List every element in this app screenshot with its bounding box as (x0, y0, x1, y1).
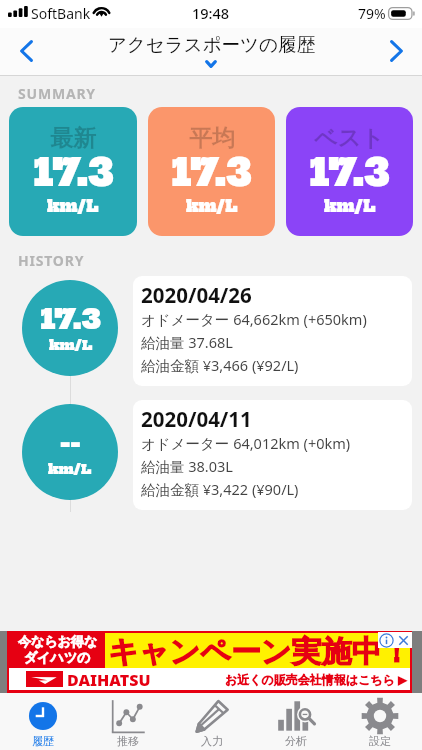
button[interactable]: 2020/04/11 (133, 400, 412, 510)
button[interactable]: 平均 (148, 107, 275, 236)
staticText: 履歴 (32, 734, 54, 748)
staticText: 給油金額 ¥3,422 (¥90/L) (141, 479, 299, 499)
staticText: お近くの販売会社情報はこちら ▶ (225, 671, 408, 687)
button[interactable]: Ad info (379, 633, 394, 648)
staticText: HISTORY (18, 251, 85, 270)
button[interactable]: 履歴 (0, 693, 85, 750)
button[interactable]: 分析 (254, 693, 338, 750)
button[interactable]: Expand (196, 56, 226, 72)
staticText: ダイハツの (24, 649, 91, 665)
staticText: ベスト (314, 124, 385, 153)
button[interactable]: Back (0, 28, 52, 76)
staticText: 給油金額 ¥3,466 (¥92/L) (141, 355, 299, 375)
staticText: 17.3 (40, 302, 101, 336)
staticText: 19:48 (192, 3, 230, 23)
staticText: キャンペーン実施中！ (108, 633, 412, 667)
button[interactable]: Close ad (396, 633, 411, 648)
button[interactable]: ベスト (286, 107, 413, 236)
button[interactable]: Forward (370, 28, 422, 76)
staticText: -- (60, 426, 81, 460)
staticText: 最新 (50, 124, 96, 153)
button[interactable]: 2020/04/26 (133, 276, 412, 386)
button[interactable]: 入力 (170, 693, 254, 750)
staticText: 今ならお得な (18, 633, 98, 649)
staticText: 入力 (201, 734, 223, 748)
staticText: オドメーター 64,662km (+650km) (141, 309, 367, 329)
button[interactable]: 17.3 (22, 280, 118, 376)
staticText: 2020/04/11 (141, 405, 252, 433)
staticText: 給油量 37.68L (141, 332, 233, 352)
staticText: km/L (48, 461, 92, 478)
staticText: SoftBank (31, 4, 91, 23)
staticText: SUMMARY (18, 84, 96, 103)
staticText: 17.3 (33, 150, 114, 196)
staticText: 給油量 38.03L (141, 456, 233, 476)
staticText: 17.3 (309, 150, 390, 196)
staticText: km/L (49, 337, 93, 354)
staticText: オドメーター 64,012km (+0km) (141, 433, 351, 453)
staticText: 17.3 (171, 150, 252, 196)
button[interactable]: 推移 (85, 693, 170, 750)
staticText: 平均 (189, 124, 235, 153)
staticText: 推移 (117, 734, 139, 748)
staticText: 79% (358, 4, 386, 23)
staticText: DAIHATSU (67, 669, 151, 691)
staticText: km/L (47, 196, 99, 216)
button[interactable]: -- (22, 404, 118, 500)
staticText: アクセラスポーツの履歴 (108, 33, 315, 56)
button[interactable]: 今ならお得な (7, 631, 412, 693)
staticText: 分析 (285, 734, 307, 748)
button[interactable]: 最新 (9, 107, 137, 236)
button[interactable]: 設定 (338, 693, 422, 750)
staticText: 2020/04/26 (141, 281, 252, 309)
staticText: 設定 (369, 734, 391, 748)
staticText: km/L (324, 196, 376, 216)
staticText: km/L (186, 196, 238, 216)
